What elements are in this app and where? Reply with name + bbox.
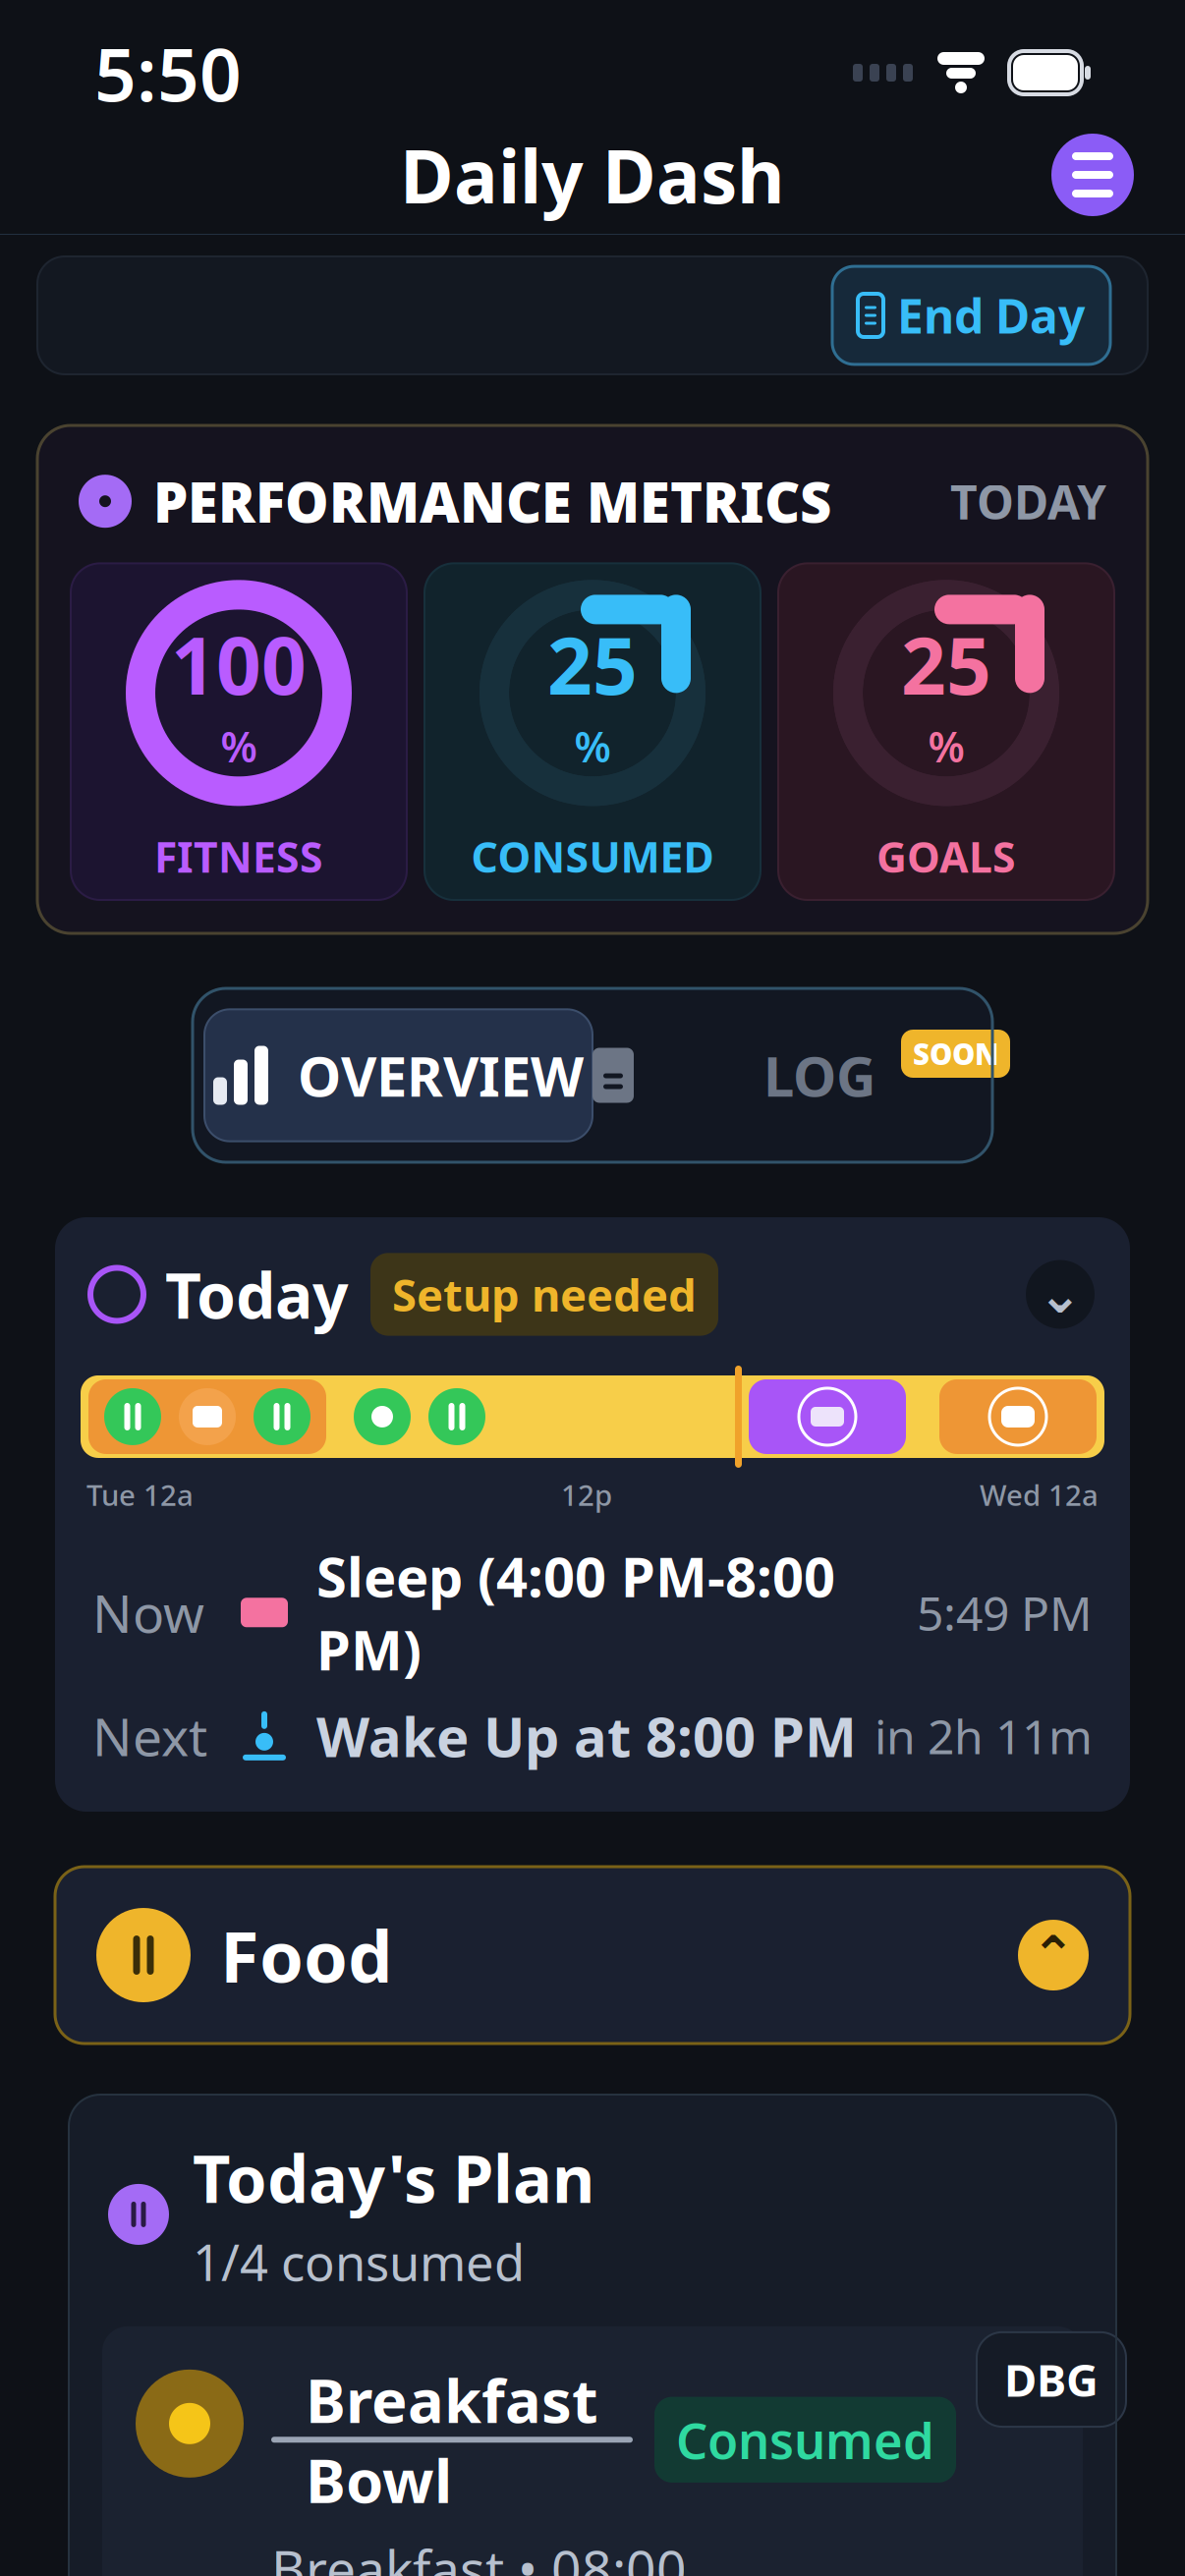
staticText: % xyxy=(574,718,611,774)
staticText: Today's Plan xyxy=(193,2134,594,2221)
button[interactable]: Collapse Today xyxy=(1026,1260,1095,1329)
staticText: % xyxy=(928,718,964,774)
staticText: % xyxy=(221,718,257,774)
staticText: OVERVIEW xyxy=(298,1039,584,1112)
staticText: End Day xyxy=(897,284,1085,347)
staticText: Breakfast Bowl xyxy=(306,2360,598,2520)
staticText: 1/4 consumed xyxy=(193,2229,525,2295)
staticText: 25 xyxy=(547,612,638,716)
staticText: 100 xyxy=(171,612,307,716)
staticText: Sleep (4:00 PM-8:00 PM) xyxy=(316,1539,835,1686)
staticText: Setup needed xyxy=(392,1265,697,1324)
staticText: Food xyxy=(220,1908,393,2002)
staticText: GOALS xyxy=(876,829,1016,884)
button[interactable]: End Day xyxy=(832,266,1110,364)
staticText: ⌄ xyxy=(1038,1265,1082,1324)
staticText: in 2h 11m xyxy=(875,1705,1093,1767)
staticText: Now xyxy=(92,1578,204,1647)
button[interactable]: LOG xyxy=(592,1000,981,1150)
staticText: LOG xyxy=(763,1039,876,1112)
staticText: DBG xyxy=(1004,2350,1099,2409)
staticText: SOON xyxy=(913,1035,998,1073)
staticText: 12p xyxy=(561,1476,612,1514)
staticText: Today xyxy=(165,1253,349,1336)
staticText: 5:49 PM xyxy=(917,1581,1093,1644)
button[interactable]: OVERVIEW xyxy=(204,1009,592,1141)
button[interactable]: DBG xyxy=(977,2332,1126,2427)
staticText: ⌃ xyxy=(1031,1925,1075,1985)
staticText: FITNESS xyxy=(154,829,323,884)
staticText: Tue 12a xyxy=(86,1476,194,1514)
staticText: Consumed xyxy=(676,2407,934,2473)
button[interactable]: Food xyxy=(55,1867,1130,2044)
button[interactable]: Menu xyxy=(1051,134,1134,216)
staticText: Wed 12a xyxy=(980,1476,1099,1514)
staticText: Daily Dash xyxy=(400,126,785,224)
staticText: CONSUMED xyxy=(471,829,714,884)
staticText: Wake Up at 8:00 PM xyxy=(316,1699,857,1772)
staticText: Next xyxy=(92,1701,207,1771)
staticText: 5:50 xyxy=(94,24,242,121)
staticText: TODAY xyxy=(950,470,1106,532)
staticText: PERFORMANCE METRICS xyxy=(153,465,831,538)
staticText: 25 xyxy=(901,612,991,716)
staticText: Breakfast • 08:00 xyxy=(271,2533,687,2576)
